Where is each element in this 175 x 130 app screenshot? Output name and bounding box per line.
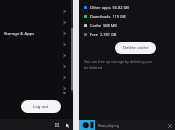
button[interactable]: Grid view xyxy=(54,122,60,128)
button[interactable]: Cursor xyxy=(64,122,70,128)
button[interactable] xyxy=(3,6,68,17)
staticText: Other apps 55.82 GB xyxy=(90,5,129,10)
staticText: Now playing xyxy=(98,123,167,128)
button[interactable]: Log out xyxy=(21,100,61,113)
staticText: Log out xyxy=(33,104,49,110)
staticText: Downloads 119 GB xyxy=(90,14,126,19)
staticText: be deleted. xyxy=(84,65,103,70)
button[interactable]: Delete cache xyxy=(115,42,156,54)
staticText: Free 2.781 GB xyxy=(90,32,117,37)
button[interactable]: Now playing xyxy=(79,120,175,130)
button[interactable] xyxy=(3,17,68,28)
staticText: Storage & Apps xyxy=(4,31,62,37)
staticText: Cache 508 MB xyxy=(90,23,117,28)
button[interactable]: Cache 508 MB xyxy=(84,21,169,30)
staticText: You can free up storage by deleting your… xyxy=(84,59,161,64)
button[interactable] xyxy=(3,61,68,72)
button[interactable]: Other apps 55.82 GB xyxy=(84,3,169,12)
button[interactable]: Free 2.781 GB xyxy=(84,30,169,39)
button[interactable]: Storage & Apps xyxy=(3,28,68,39)
button[interactable] xyxy=(3,50,68,61)
button[interactable] xyxy=(3,83,68,93)
button[interactable]: Close xyxy=(167,123,172,128)
button[interactable] xyxy=(3,39,68,50)
button[interactable] xyxy=(3,72,68,83)
button[interactable]: Downloads 119 GB xyxy=(84,12,169,21)
staticText: Delete cache xyxy=(123,45,149,51)
